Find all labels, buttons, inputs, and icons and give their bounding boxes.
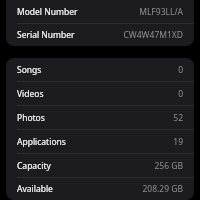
staticText: 256 GB xyxy=(154,160,183,172)
button[interactable]: Videos xyxy=(6,82,194,105)
staticText: Videos xyxy=(17,88,44,100)
staticText: MLF93LL/A xyxy=(139,6,183,18)
button[interactable]: Photos xyxy=(6,106,194,129)
staticText: Available xyxy=(17,183,53,195)
button[interactable]: Model Number xyxy=(6,0,194,23)
staticText: 0 xyxy=(178,64,183,76)
button[interactable]: Songs xyxy=(6,58,194,81)
staticText: 19 xyxy=(173,136,183,148)
staticText: 52 xyxy=(173,112,183,124)
staticText: Photos xyxy=(17,112,45,124)
staticText: 208.29 GB xyxy=(142,183,183,195)
staticText: Capacity xyxy=(17,160,51,172)
staticText: Applications xyxy=(17,136,66,148)
button[interactable]: Applications xyxy=(6,130,194,153)
button[interactable]: Available xyxy=(6,178,194,200)
button[interactable]: Capacity xyxy=(6,154,194,177)
staticText: Songs xyxy=(17,64,42,76)
staticText: CW4W47M1XD xyxy=(123,29,183,41)
staticText: Model Number xyxy=(17,6,78,18)
staticText: 0 xyxy=(178,88,183,100)
button[interactable]: Serial Number xyxy=(6,24,194,46)
staticText: Serial Number xyxy=(17,29,75,41)
